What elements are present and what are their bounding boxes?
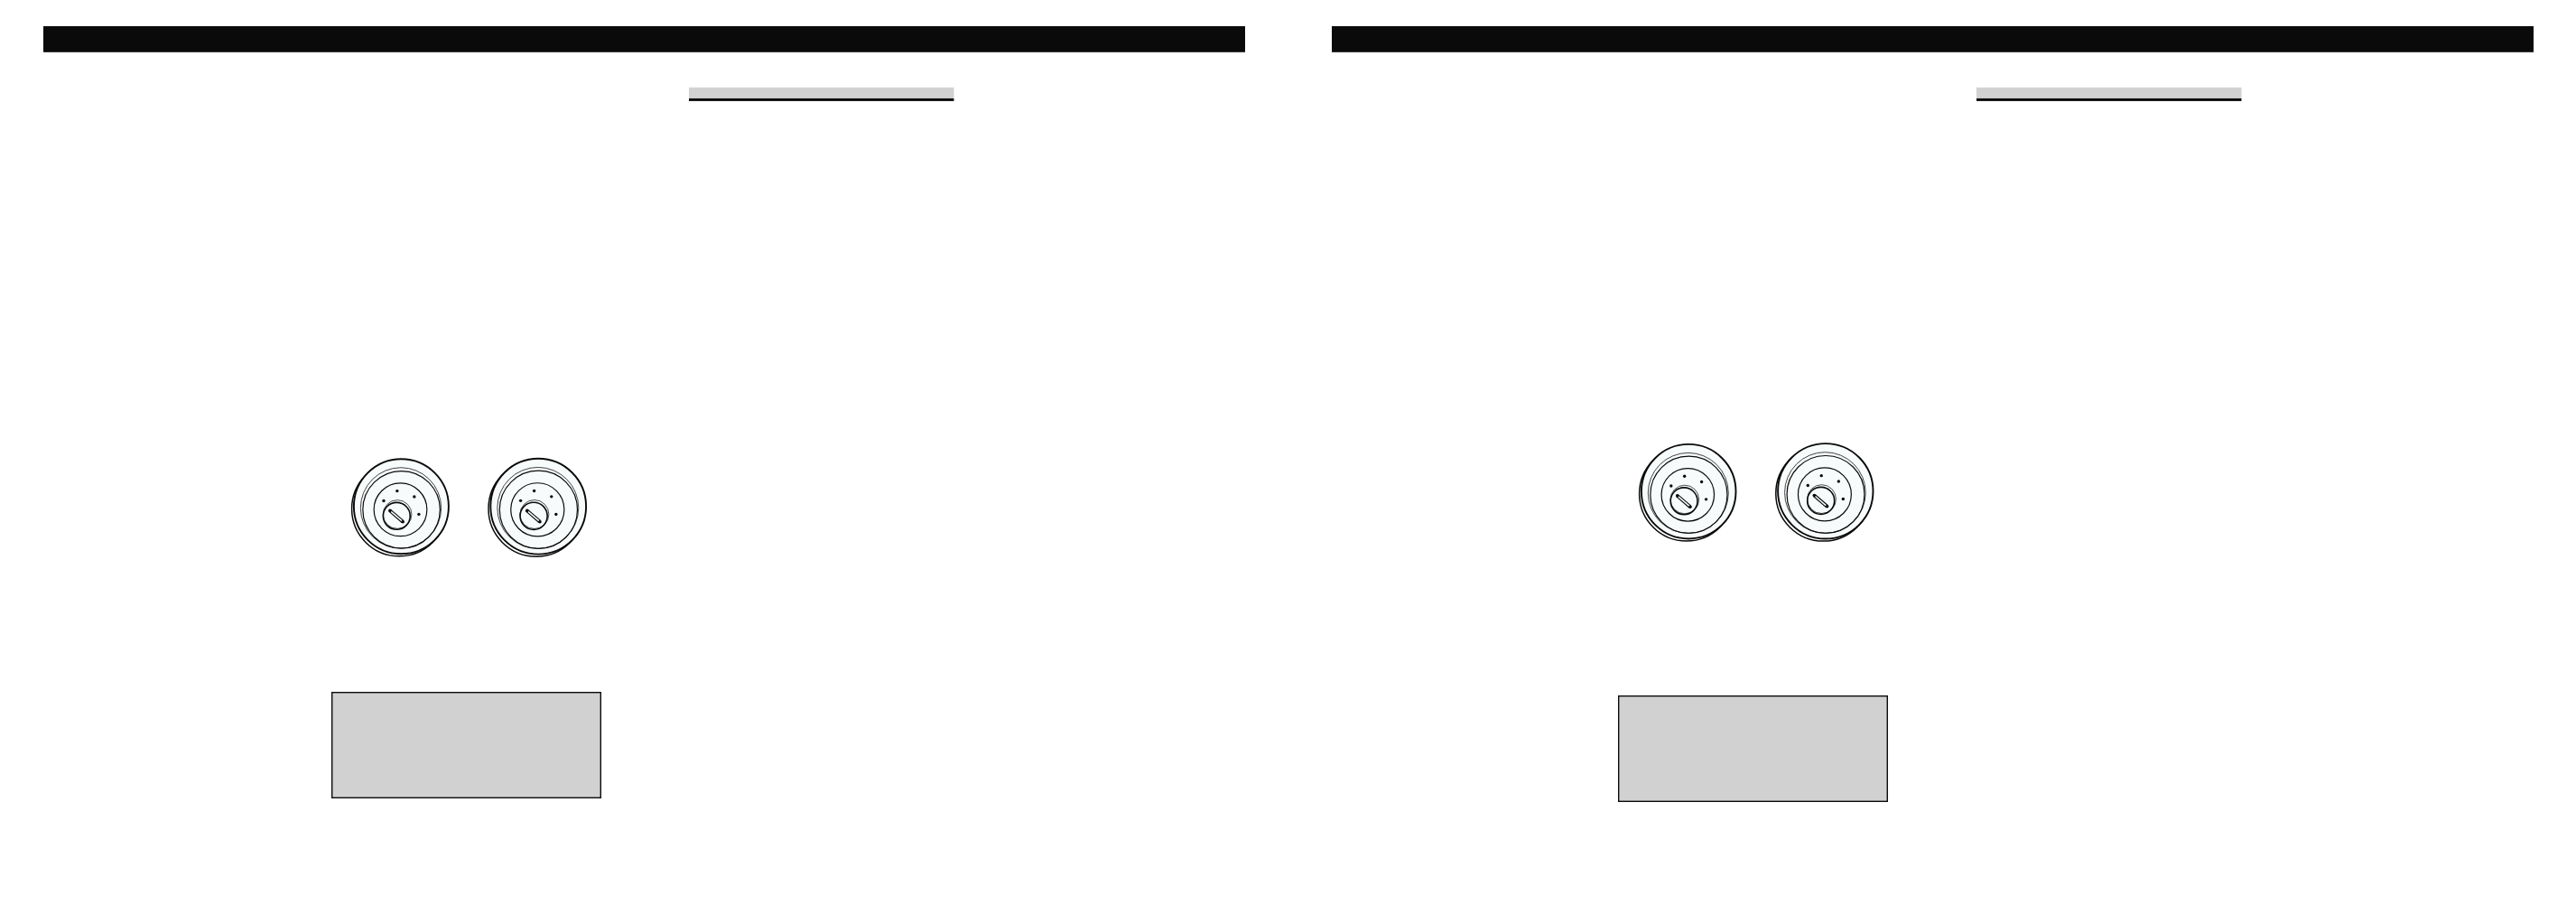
button[interactable]: Sheet 1 brake drum front view <box>350 455 452 557</box>
button[interactable]: Sheet 1 title field <box>689 88 954 101</box>
button[interactable]: Sheet 1 header band <box>43 26 1245 52</box>
button[interactable]: Sheet 2 brake drum rear view <box>1774 440 1876 542</box>
button[interactable]: Sheet 2 brake drum front view <box>1638 441 1740 543</box>
button[interactable]: Sheet 2 header band <box>1332 26 2534 52</box>
button[interactable]: Sheet 1 notes card <box>331 692 601 798</box>
button[interactable]: Sheet 2 title field <box>1976 88 2242 101</box>
button[interactable]: Sheet 1 brake drum rear view <box>487 455 590 558</box>
button[interactable]: Sheet 2 notes card <box>1618 695 1888 802</box>
